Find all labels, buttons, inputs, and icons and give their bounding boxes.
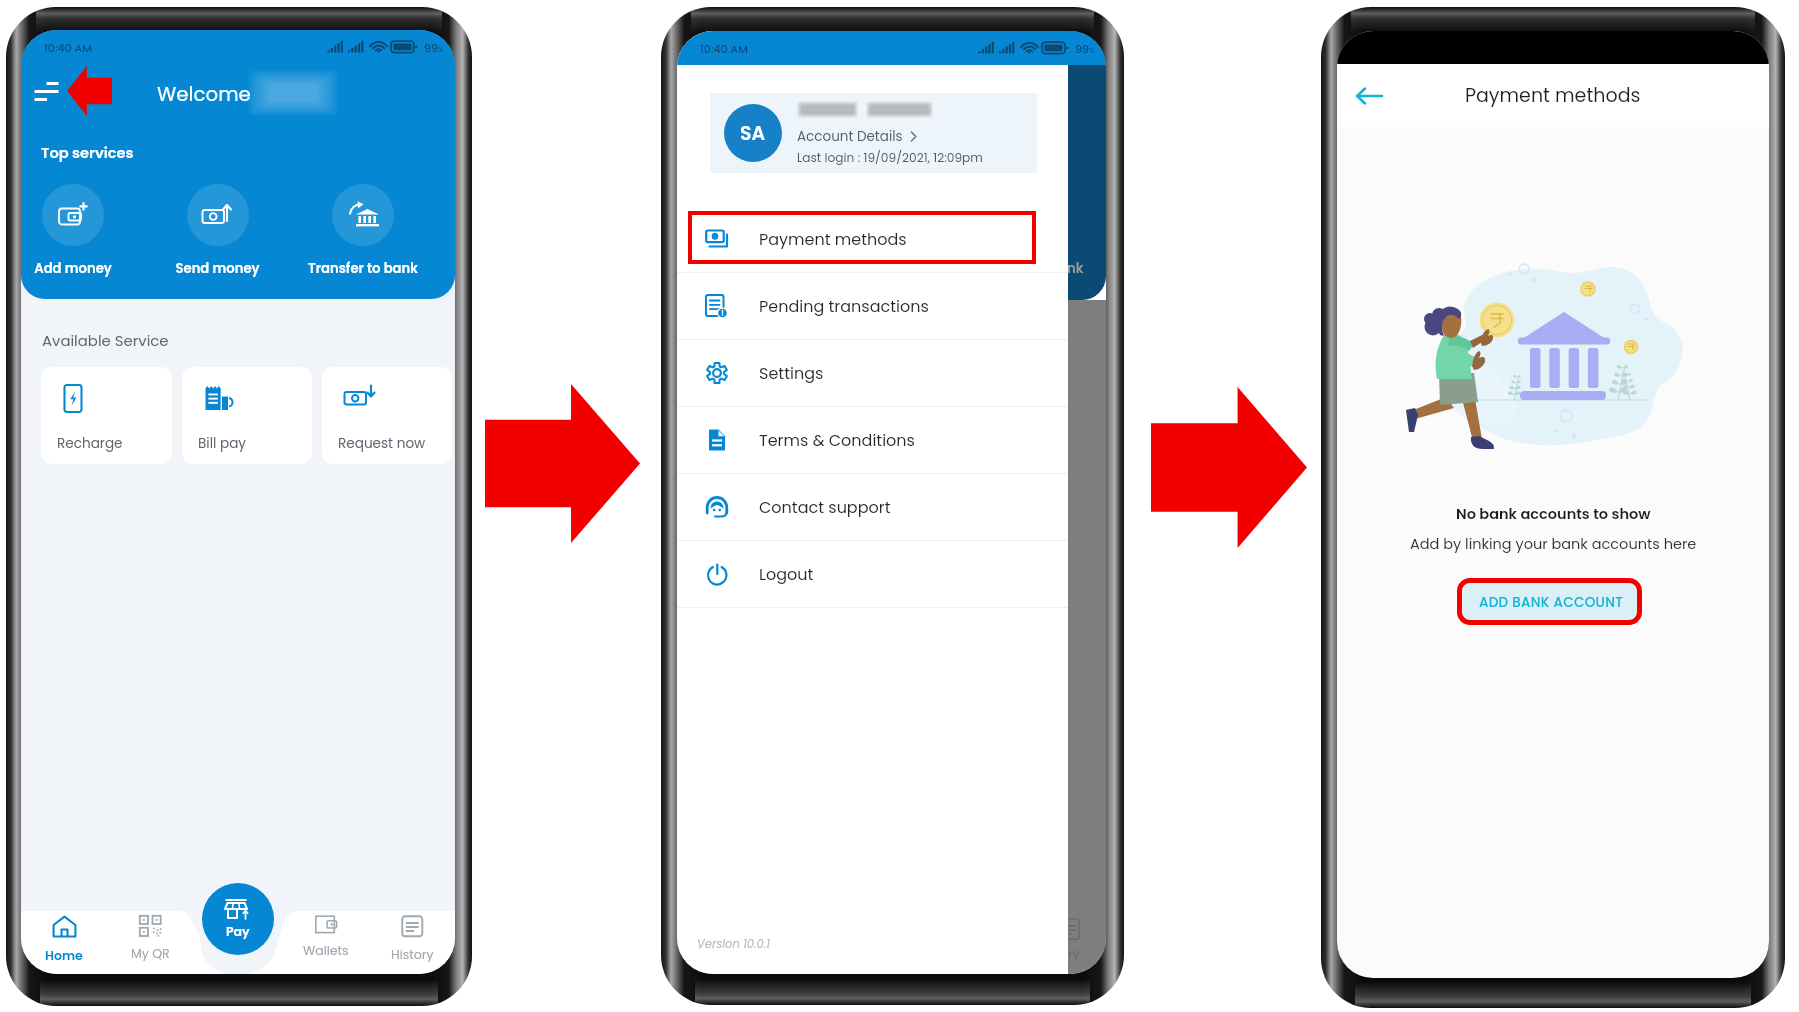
button[interactable]: Pay [202, 883, 274, 955]
staticText: ory [1060, 945, 1080, 962]
button[interactable]: History [369, 911, 455, 974]
button[interactable]: Wallets [283, 911, 369, 974]
button[interactable]: Settings [677, 340, 1068, 406]
staticText: Recharge [57, 434, 123, 453]
button[interactable]: Transfer to bank [290, 184, 435, 277]
staticText: Last login : 19/09/2021, 12:09pm [797, 149, 983, 166]
staticText: Contact support [759, 496, 891, 518]
staticText: Pending transactions [759, 295, 929, 317]
staticText: My QR [131, 945, 170, 962]
staticText: Logout [759, 563, 814, 585]
button[interactable]: SA [710, 93, 1037, 173]
staticText: Transfer to bank [308, 259, 418, 277]
staticText: Available Service [42, 330, 169, 351]
staticText: Bill pay [198, 434, 247, 453]
staticText: Pay [226, 923, 250, 940]
staticText: Terms & Conditions [759, 429, 915, 451]
button[interactable]: Open navigation menu [22, 69, 70, 115]
staticText: 10:40 AM [44, 40, 92, 55]
staticText: Account Details [797, 127, 903, 146]
staticText: nk [1067, 259, 1084, 277]
staticText: No bank accounts to show [1456, 504, 1651, 524]
staticText: % [438, 44, 444, 54]
button[interactable]: Back [1348, 74, 1392, 118]
staticText: Payment methods [759, 228, 907, 250]
staticText: 99 [424, 40, 438, 55]
button[interactable]: Terms & Conditions [677, 407, 1068, 473]
button[interactable]: Logout [677, 541, 1068, 607]
button[interactable]: Pending transactions [677, 273, 1068, 339]
button[interactable]: Request now [322, 367, 452, 464]
staticText: Wallets [303, 942, 349, 959]
button[interactable]: Payment methods [677, 206, 1068, 272]
staticText: Send money [175, 259, 260, 277]
button[interactable]: Contact support [677, 474, 1068, 540]
staticText: Version 10.0.1 [697, 936, 770, 952]
button[interactable]: ADD BANK ACCOUNT [1463, 582, 1639, 623]
staticText: 10:40 AM [700, 41, 748, 56]
button[interactable]: Bill pay [182, 367, 312, 464]
button[interactable]: Recharge [41, 367, 172, 464]
button[interactable]: Send money [145, 184, 290, 277]
staticText: Home [45, 947, 83, 964]
button[interactable]: Add money [21, 184, 145, 277]
button[interactable]: Home [21, 911, 107, 974]
staticText: Add money [34, 259, 112, 277]
staticText: Top services [41, 143, 134, 163]
staticText: Settings [759, 362, 824, 384]
staticText: Add by linking your bank accounts here [1410, 534, 1697, 554]
staticText: Request now [338, 434, 426, 453]
staticText: SA [740, 120, 766, 147]
staticText: Welcome [157, 80, 251, 108]
staticText: % [1089, 45, 1095, 55]
button[interactable]: My QR [107, 911, 193, 974]
staticText: ADD BANK ACCOUNT [1479, 593, 1624, 612]
staticText: 99 [1075, 41, 1089, 56]
staticText: History [391, 946, 434, 963]
staticText: Payment methods [1465, 82, 1641, 109]
